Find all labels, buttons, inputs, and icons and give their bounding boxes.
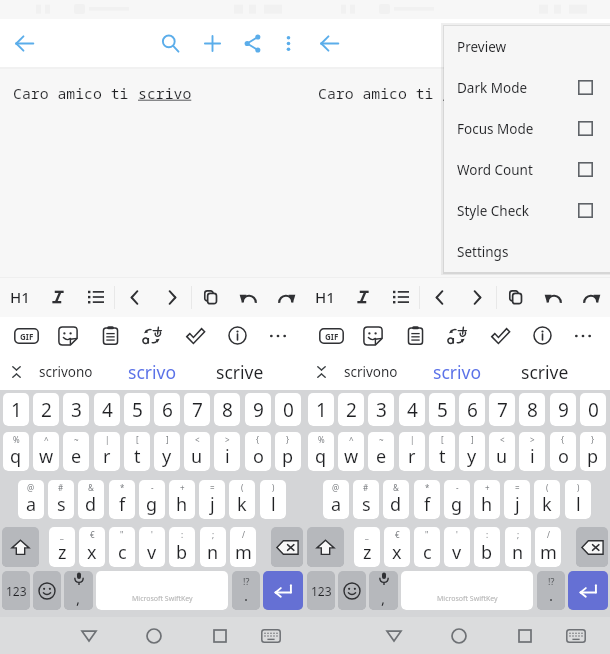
button[interactable]: ]: [154, 432, 180, 471]
button[interactable]: Shift: [2, 527, 39, 567]
button[interactable]: €: [384, 527, 410, 567]
button[interactable]: <: [489, 432, 515, 471]
button[interactable]: /: [230, 527, 256, 567]
button[interactable]: 2: [338, 393, 364, 426]
button[interactable]: _: [49, 527, 75, 567]
button[interactable]: =: [504, 480, 530, 519]
button[interactable]: +: [474, 480, 500, 519]
button[interactable]: :: [474, 527, 500, 567]
button[interactable]: Clipboard: [89, 317, 131, 354]
button[interactable]: #: [353, 480, 379, 519]
button[interactable]: _: [354, 527, 380, 567]
button[interactable]: scrivo: [110, 354, 194, 390]
button[interactable]: scrivono: [24, 354, 108, 390]
button[interactable]: Home: [133, 617, 175, 654]
button[interactable]: Search: [151, 24, 189, 62]
button[interactable]: Italic: [39, 277, 77, 317]
button[interactable]: >: [214, 432, 240, 471]
button[interactable]: #: [48, 480, 74, 519]
button[interactable]: 7: [489, 393, 515, 426]
button[interactable]: Close suggestions: [305, 354, 337, 390]
button[interactable]: 5: [429, 393, 455, 426]
button[interactable]: 0: [580, 393, 606, 426]
button[interactable]: Clipboard: [394, 317, 436, 354]
button[interactable]: ]: [459, 432, 485, 471]
button[interactable]: Recents: [504, 617, 546, 654]
button[interactable]: GIF: [5, 317, 47, 354]
button[interactable]: Space: [401, 571, 533, 610]
button[interactable]: -: [444, 480, 470, 519]
button[interactable]: Italic: [344, 277, 382, 317]
button[interactable]: ;: [505, 527, 531, 567]
button[interactable]: 4: [399, 393, 425, 426]
button[interactable]: Back: [373, 617, 415, 654]
button[interactable]: More options: [576, 24, 610, 62]
button[interactable]: Info: [521, 317, 563, 354]
button[interactable]: &: [78, 480, 104, 519]
button[interactable]: 7: [184, 393, 210, 426]
button[interactable]: 6: [459, 393, 485, 426]
button[interactable]: :: [169, 527, 195, 567]
button[interactable]: ": [109, 527, 135, 567]
button[interactable]: ): [565, 480, 591, 519]
button[interactable]: @: [18, 480, 44, 519]
button[interactable]: Back: [310, 24, 348, 62]
button[interactable]: 9: [245, 393, 271, 426]
button[interactable]: ;: [200, 527, 226, 567]
button[interactable]: 6: [154, 393, 180, 426]
button[interactable]: ": [414, 527, 440, 567]
button[interactable]: =: [199, 480, 225, 519]
button[interactable]: (: [229, 480, 255, 519]
button[interactable]: Redo: [267, 277, 305, 317]
button[interactable]: *: [109, 480, 135, 519]
button[interactable]: Close suggestions: [0, 354, 32, 390]
button[interactable]: Stickers: [47, 317, 89, 354]
button[interactable]: 8: [214, 393, 240, 426]
button[interactable]: [: [124, 432, 150, 471]
button[interactable]: Back: [5, 24, 43, 62]
button[interactable]: Copy: [191, 277, 229, 317]
button[interactable]: Word Count: [444, 149, 610, 190]
button[interactable]: Bullet list: [382, 277, 420, 317]
button[interactable]: Heading 1: [0, 277, 39, 317]
button[interactable]: |: [94, 432, 120, 471]
button[interactable]: Previous: [420, 277, 458, 317]
button[interactable]: Voice input: [369, 571, 398, 610]
button[interactable]: Heading 1: [305, 277, 344, 317]
button[interactable]: -: [139, 480, 165, 519]
button[interactable]: Stickers: [352, 317, 394, 354]
button[interactable]: %: [3, 432, 29, 471]
button[interactable]: Shift: [307, 527, 344, 567]
button[interactable]: Undo: [229, 277, 267, 317]
button[interactable]: Search: [456, 24, 494, 62]
button[interactable]: &: [383, 480, 409, 519]
button[interactable]: 3: [368, 393, 394, 426]
button[interactable]: %: [308, 432, 334, 471]
button[interactable]: 3: [63, 393, 89, 426]
button[interactable]: 2: [33, 393, 59, 426]
button[interactable]: ^: [33, 432, 59, 471]
button[interactable]: Redo: [572, 277, 610, 317]
button[interactable]: <: [184, 432, 210, 471]
button[interactable]: Back: [68, 617, 110, 654]
button[interactable]: ^: [338, 432, 364, 471]
button[interactable]: Info: [216, 317, 258, 354]
button[interactable]: ~: [368, 432, 394, 471]
button[interactable]: ~: [63, 432, 89, 471]
button[interactable]: Enter: [263, 571, 303, 610]
button[interactable]: Next: [458, 277, 496, 317]
button[interactable]: Home: [438, 617, 480, 654]
button[interactable]: 4: [94, 393, 120, 426]
button[interactable]: Bullet list: [77, 277, 115, 317]
button[interactable]: Enter: [568, 571, 608, 610]
button[interactable]: Emoji: [33, 571, 61, 610]
button[interactable]: 8: [519, 393, 545, 426]
button[interactable]: 5: [124, 393, 150, 426]
button[interactable]: 9: [550, 393, 576, 426]
button[interactable]: scrivono: [329, 354, 413, 390]
button[interactable]: Backspace: [271, 527, 303, 567]
button[interactable]: Share: [538, 24, 576, 62]
button[interactable]: Space: [96, 571, 228, 610]
button[interactable]: GIF: [310, 317, 352, 354]
button[interactable]: Backspace: [576, 527, 608, 567]
